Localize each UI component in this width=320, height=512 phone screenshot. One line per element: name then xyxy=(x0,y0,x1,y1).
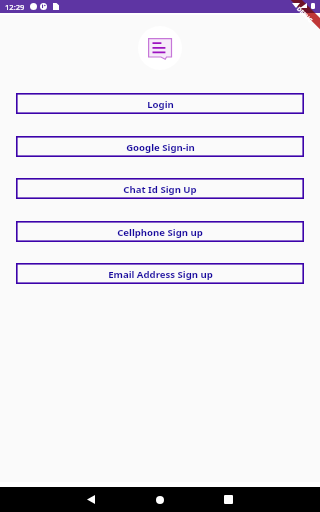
staticText: 12:29 xyxy=(5,2,25,12)
button[interactable]: Login xyxy=(16,93,304,114)
button[interactable]: Email Address Sign up xyxy=(16,263,304,284)
staticText: Cellphone Sign up xyxy=(117,226,203,239)
button[interactable]: Chat Id Sign Up xyxy=(16,178,304,199)
button[interactable]: Recent apps xyxy=(210,487,246,512)
button[interactable]: Google Sign-in xyxy=(16,136,304,157)
button[interactable]: Cellphone Sign up xyxy=(16,221,304,242)
button[interactable]: Back xyxy=(73,487,109,512)
staticText: Google Sign-in xyxy=(126,141,195,154)
staticText: Login xyxy=(147,98,174,111)
button[interactable]: Home xyxy=(142,487,178,512)
staticText: Email Address Sign up xyxy=(108,268,213,281)
staticText: Chat Id Sign Up xyxy=(123,183,197,196)
staticText: DEBUG xyxy=(295,5,315,25)
